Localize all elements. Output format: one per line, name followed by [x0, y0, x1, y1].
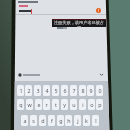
staticText: d [41, 117, 45, 124]
staticText: r [45, 101, 48, 108]
staticText: 8 [81, 87, 85, 94]
button[interactable]: p [96, 99, 103, 110]
staticText: i [82, 101, 84, 108]
button[interactable]: w [26, 99, 33, 110]
staticText: w [27, 101, 32, 108]
staticText: 0 [98, 87, 102, 94]
staticText: 9 [89, 87, 93, 94]
staticText: q [19, 101, 23, 108]
staticText: 4 [45, 87, 49, 94]
staticText: s [32, 117, 35, 124]
button[interactable]: u [70, 99, 77, 110]
button[interactable]: a [21, 115, 28, 126]
button[interactable]: k [83, 115, 90, 126]
button[interactable]: q [17, 99, 24, 110]
button[interactable]: 7 [70, 85, 77, 96]
staticText: u [72, 101, 76, 108]
button[interactable]: i [79, 99, 86, 110]
button[interactable]: 1 [17, 85, 24, 96]
staticText: p [98, 101, 102, 108]
button[interactable]: 0 [96, 85, 103, 96]
staticText: f [51, 117, 53, 124]
button[interactable]: t [52, 99, 59, 110]
button[interactable]: Input error [96, 8, 101, 13]
button[interactable]: 注册失败，该用户名已被占用 [52, 19, 106, 27]
button[interactable]: y [61, 99, 68, 110]
staticText: a [23, 117, 27, 124]
staticText: 7 [72, 87, 76, 94]
button[interactable]: l [92, 115, 99, 126]
button[interactable]: r [43, 99, 50, 110]
button[interactable]: j [74, 115, 81, 126]
staticText: o [90, 101, 94, 108]
button[interactable]: 3 [34, 85, 41, 96]
button[interactable]: 5 [52, 85, 59, 96]
staticText: g [59, 117, 63, 124]
button[interactable]: g [57, 115, 64, 126]
button[interactable]: 8 [79, 85, 86, 96]
button[interactable]: 2 [25, 85, 32, 96]
staticText: y [63, 101, 66, 108]
button[interactable]: o [88, 99, 95, 110]
staticText: 3 [36, 87, 40, 94]
staticText: t [55, 101, 57, 108]
other: Show more [99, 72, 104, 77]
staticText: j [77, 117, 79, 124]
button[interactable]: f [48, 115, 55, 126]
staticText: 注册失败，该用户名已被占用 [52, 20, 106, 28]
staticText: 5 [54, 87, 58, 94]
staticText: e [37, 101, 41, 108]
button[interactable]: 6 [61, 85, 68, 96]
button[interactable]: 4 [43, 85, 50, 96]
button[interactable]: d [39, 115, 46, 126]
staticText: 6 [63, 87, 67, 94]
staticText: 1 [19, 87, 23, 94]
button[interactable]: e [35, 99, 42, 110]
button[interactable]: h [65, 115, 72, 126]
button[interactable]: Show more [15, 70, 107, 79]
staticText: h [67, 117, 71, 124]
staticText: 2 [27, 87, 31, 94]
staticText: l [95, 117, 97, 124]
staticText: k [85, 117, 88, 124]
button[interactable]: 9 [87, 85, 94, 96]
button[interactable]: s [30, 115, 37, 126]
